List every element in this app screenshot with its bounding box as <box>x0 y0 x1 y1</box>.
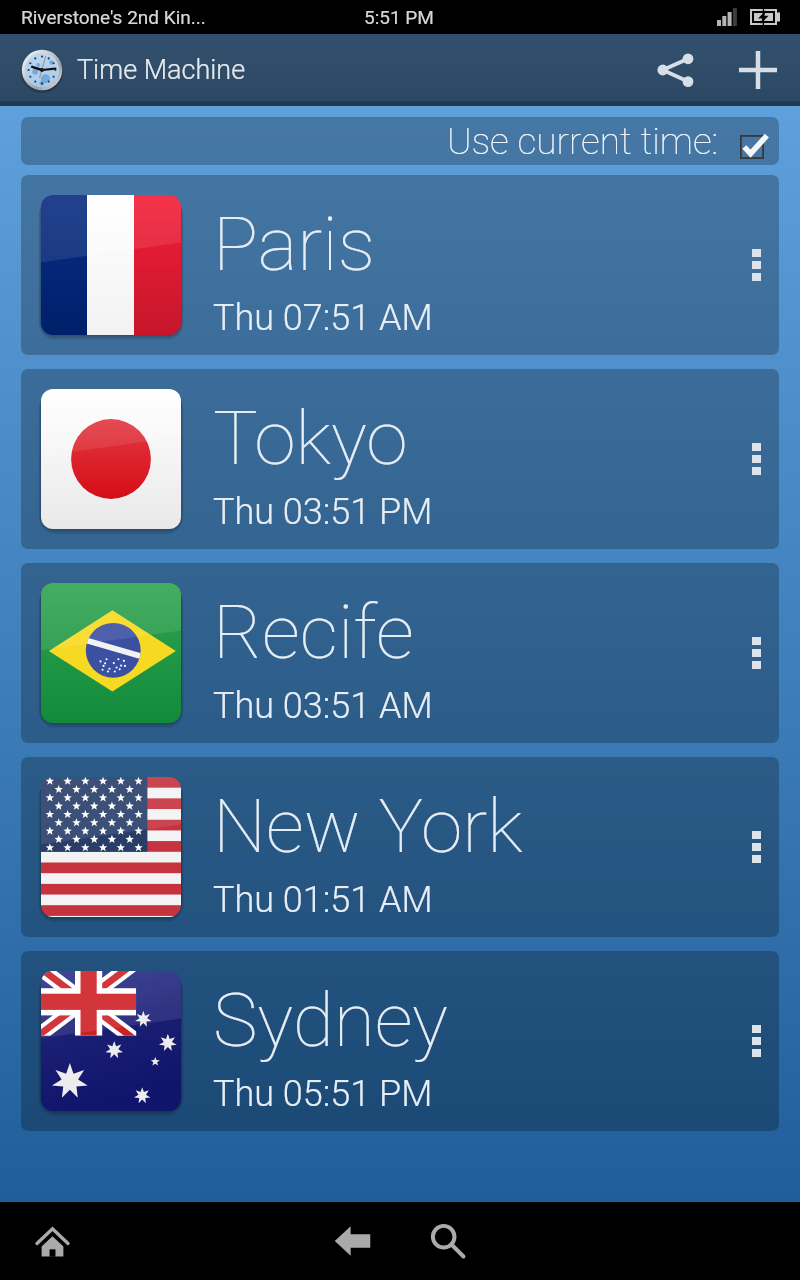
button[interactable]: Back <box>316 1205 388 1277</box>
button[interactable]: Tokyo <box>21 369 779 549</box>
button[interactable]: Sydney <box>21 951 779 1131</box>
button[interactable]: Share <box>636 34 716 106</box>
staticText: Tokyo <box>213 394 408 482</box>
button[interactable]: More options <box>733 757 779 937</box>
button[interactable]: More options <box>733 951 779 1131</box>
staticText: Thu 03:51 PM <box>213 491 433 533</box>
staticText: Use current time: <box>447 120 719 163</box>
staticText: Thu 07:51 AM <box>213 297 433 339</box>
staticText: 5:51 PM <box>364 6 434 28</box>
staticText: Recife <box>213 588 414 676</box>
staticText: Sydney <box>213 976 448 1064</box>
button[interactable]: Home <box>16 1205 88 1277</box>
button[interactable]: Use current time: <box>21 117 779 165</box>
button[interactable]: Search <box>412 1205 484 1277</box>
staticText: Thu 03:51 AM <box>213 685 433 727</box>
staticText: Time Machine <box>77 54 246 86</box>
button[interactable]: More options <box>733 175 779 355</box>
button[interactable]: Recife <box>21 563 779 743</box>
button[interactable]: More options <box>733 369 779 549</box>
button[interactable]: Paris <box>21 175 779 355</box>
staticText: Thu 05:51 PM <box>213 1073 433 1115</box>
button[interactable]: Add city <box>716 34 800 106</box>
button[interactable]: More options <box>733 563 779 743</box>
staticText: Riverstone's 2nd Kin... <box>21 6 206 28</box>
button[interactable]: New York <box>21 757 779 937</box>
staticText: New York <box>213 782 523 870</box>
staticText: Paris <box>213 200 376 288</box>
staticText: Thu 01:51 AM <box>213 879 433 921</box>
